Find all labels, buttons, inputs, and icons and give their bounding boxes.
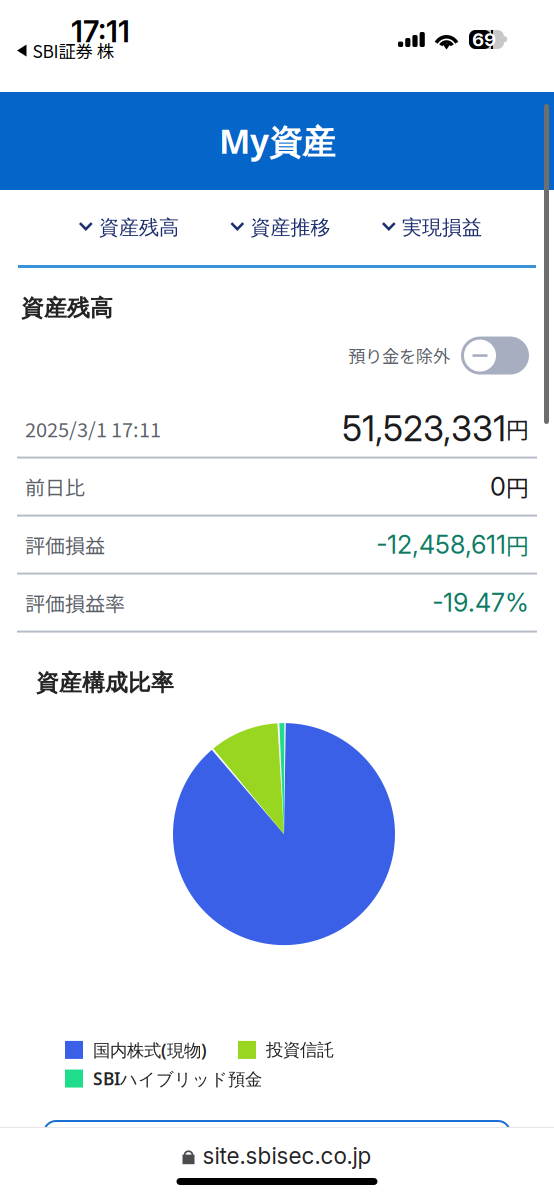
staticText: 円: [506, 470, 529, 503]
staticText: -12,458,611: [376, 529, 506, 560]
button[interactable]: 預り金を除外: [461, 337, 529, 375]
button[interactable]: 資産残高: [75, 199, 183, 256]
button[interactable]: site.sbisec.co.jp: [182, 1142, 371, 1169]
staticText: 実現損益: [402, 215, 482, 240]
staticText: 資産残高: [99, 215, 179, 240]
staticText: 資産残高: [21, 294, 113, 323]
staticText: My資産: [219, 118, 335, 164]
button[interactable]: 実現損益: [378, 199, 486, 256]
staticText: 資産推移: [250, 215, 330, 240]
staticText: 69: [472, 28, 496, 51]
staticText: 17:11: [71, 14, 130, 49]
staticText: SBIハイブリッド預金: [93, 1067, 262, 1090]
staticText: 投資信託: [266, 1039, 334, 1061]
staticText: -19.47%: [432, 587, 529, 618]
staticText: 円: [506, 528, 529, 561]
staticText: 預り金を除外: [348, 343, 450, 368]
staticText: 評価損益率: [25, 588, 125, 617]
staticText: 評価損益: [25, 530, 105, 559]
staticText: site.sbisec.co.jp: [202, 1142, 371, 1169]
staticText: 円: [506, 412, 529, 445]
staticText: SBI証券 株: [32, 38, 113, 63]
staticText: 資産構成比率: [36, 669, 174, 697]
staticText: 前日比: [25, 472, 85, 501]
button[interactable]: 資産推移: [226, 199, 334, 256]
staticText: 51,523,331: [342, 408, 506, 449]
staticText: 2025/3/1 17:11: [25, 414, 161, 443]
staticText: 0: [490, 471, 506, 502]
staticText: 国内株式(現物): [93, 1038, 207, 1062]
